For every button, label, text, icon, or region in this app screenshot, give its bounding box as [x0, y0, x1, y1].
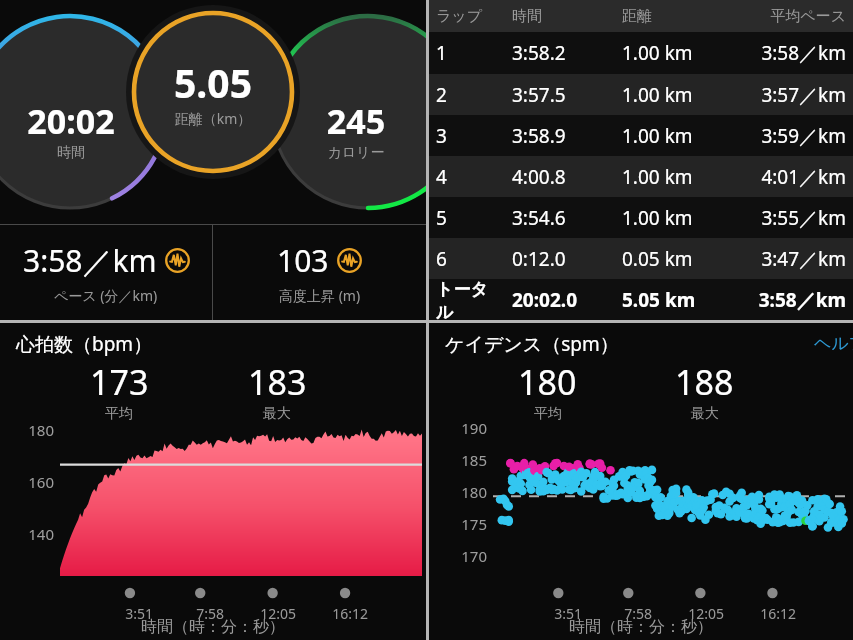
staticText: 0.05 km [622, 246, 727, 272]
button[interactable]: トータル [429, 279, 853, 320]
staticText: 1.00 km [622, 123, 727, 149]
button[interactable]: 5 [429, 197, 853, 238]
staticText: 175 [429, 514, 487, 534]
staticText: 最大 [263, 405, 291, 423]
staticText: 1.00 km [622, 205, 727, 231]
staticText: 2 [436, 82, 498, 108]
staticText: 16:12 [429, 604, 796, 623]
staticText: 時間（時：分：秒） [429, 617, 853, 637]
staticText: 12:05 [429, 604, 724, 623]
staticText: 3:57／km [741, 82, 846, 108]
staticText: ペース (分／km) [54, 286, 158, 305]
staticText: 1.00 km [622, 40, 727, 66]
staticText: 3:59／km [741, 123, 846, 149]
staticText: 190 [429, 418, 487, 438]
staticText: 16:12 [0, 604, 368, 623]
staticText: 7:58 [0, 604, 224, 623]
staticText: 183 [248, 359, 307, 405]
staticText: 3:54.6 [512, 205, 608, 231]
staticText: 距離 [622, 7, 727, 26]
staticText: 1.00 km [622, 164, 727, 190]
staticText: 3:51 [429, 604, 582, 623]
button[interactable]: ヘルプ [814, 333, 853, 354]
staticText: ケイデンス（spm） [445, 331, 619, 357]
staticText: 180 [429, 482, 487, 502]
staticText: 5 [436, 205, 498, 231]
button[interactable]: 3 [429, 115, 853, 156]
staticText: 3:58.9 [512, 123, 608, 149]
staticText: 170 [429, 546, 487, 566]
staticText: 平均 [105, 405, 133, 423]
staticText: 3:58／km [741, 287, 846, 313]
staticText: 12:05 [0, 604, 296, 623]
staticText: 20:02 [0, 98, 142, 144]
staticText: 1 [436, 40, 498, 66]
button[interactable]: 4 [429, 156, 853, 197]
button[interactable]: 1 [429, 32, 853, 74]
staticText: 188 [675, 359, 734, 405]
staticText: ラップ [436, 7, 498, 26]
staticText: 心拍数（bpm） [16, 331, 153, 357]
staticText: 時間 [512, 7, 608, 26]
staticText: トータル [436, 279, 498, 320]
staticText: 20:02.0 [512, 287, 608, 313]
staticText: 3:55／km [741, 205, 846, 231]
staticText: 4:01／km [741, 164, 846, 190]
staticText: 3:47／km [741, 246, 846, 272]
staticText: 103 [277, 240, 329, 281]
staticText: 3:58.2 [512, 40, 608, 66]
staticText: 3 [436, 123, 498, 149]
staticText: 180 [518, 359, 577, 405]
button[interactable]: 3:58／km [0, 225, 212, 320]
other: グラフを表示 [337, 248, 362, 273]
staticText: 1.00 km [622, 82, 727, 108]
staticText: 180 [0, 420, 54, 440]
staticText: 5.05 km [622, 287, 727, 313]
staticText: 3:57.5 [512, 82, 608, 108]
staticText: 7:58 [429, 604, 652, 623]
staticText: 平均ペース [741, 7, 846, 26]
staticText: 高度上昇 (m) [279, 286, 361, 305]
staticText: 185 [429, 450, 487, 470]
button[interactable]: 6 [429, 238, 853, 279]
staticText: 173 [90, 359, 149, 405]
button[interactable]: ケイデンス（spm） [429, 323, 853, 640]
staticText: 3:51 [0, 604, 153, 623]
staticText: 140 [0, 524, 54, 544]
staticText: 最大 [691, 405, 719, 423]
staticText: 時間（時：分：秒） [0, 617, 426, 637]
staticText: 5.05 [128, 56, 298, 109]
other: グラフを表示 [165, 248, 190, 273]
button[interactable]: 103 [213, 225, 426, 320]
staticText: 245 [286, 98, 426, 144]
staticText: 0:12.0 [512, 246, 608, 272]
staticText: 平均 [534, 405, 562, 423]
staticText: 距離（km） [128, 109, 298, 128]
staticText: 3:58／km [741, 40, 846, 66]
staticText: 160 [0, 472, 54, 492]
staticText: 3:58／km [23, 240, 157, 281]
staticText: 4 [436, 164, 498, 190]
button[interactable]: 2 [429, 74, 853, 115]
staticText: カロリー [286, 144, 426, 162]
staticText: 6 [436, 246, 498, 272]
staticText: 4:00.8 [512, 164, 608, 190]
staticText: 時間 [0, 144, 142, 162]
button[interactable]: 心拍数（bpm） [0, 323, 426, 640]
